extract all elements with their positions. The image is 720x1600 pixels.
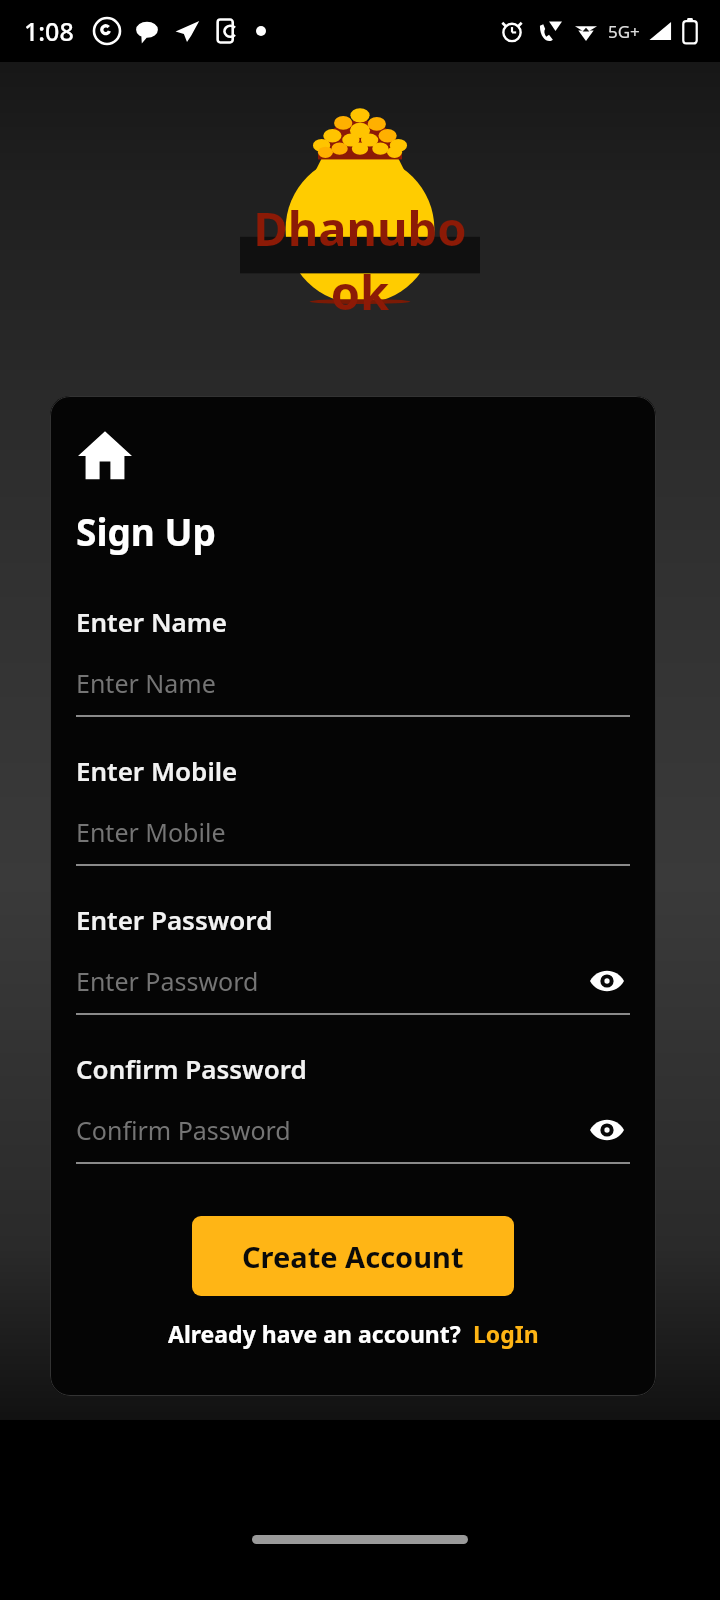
staticText: 1:08 (24, 14, 74, 48)
button[interactable]: Enter Mobile (76, 810, 630, 854)
staticText: Enter Name (76, 604, 227, 639)
staticText: Enter Mobile (76, 815, 226, 849)
button[interactable]: Confirm Password (76, 1108, 630, 1152)
button[interactable]: Enter Name (76, 661, 630, 705)
staticText: 5G+ (608, 20, 640, 43)
button[interactable]: Toggle password visibility (584, 1108, 630, 1152)
staticText: Enter Name (76, 666, 216, 700)
button[interactable]: Home (76, 426, 134, 484)
staticText: Create Account (242, 1237, 464, 1276)
staticText: Confirm Password (76, 1051, 307, 1086)
button[interactable]: Enter Password (76, 959, 630, 1003)
staticText: Sign Up (76, 506, 216, 556)
staticText: Enter Password (76, 964, 259, 998)
button[interactable]: Create Account (192, 1216, 514, 1296)
staticText: Enter Mobile (76, 753, 238, 788)
button[interactable]: LogIn (473, 1318, 539, 1349)
staticText: Confirm Password (76, 1113, 291, 1147)
staticText: Enter Password (76, 902, 273, 937)
staticText: LogIn (473, 1318, 539, 1349)
staticText: Already have an account? (168, 1318, 461, 1349)
staticText: Dhanubook (240, 196, 480, 324)
button[interactable]: Toggle password visibility (584, 959, 630, 1003)
